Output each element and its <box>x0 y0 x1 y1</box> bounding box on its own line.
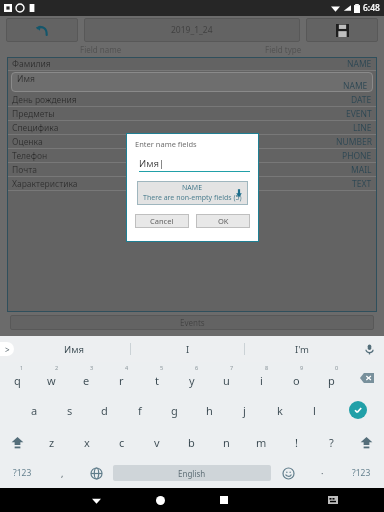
button[interactable]: 5 <box>139 362 174 394</box>
button[interactable]: 2 <box>34 362 69 394</box>
staticText: ? <box>329 435 334 450</box>
button[interactable]: День рождения <box>7 93 377 107</box>
staticText: a <box>31 403 38 418</box>
button[interactable]: Cancel <box>135 214 189 228</box>
button[interactable]: 2019_1_24 <box>84 18 300 42</box>
staticText: 4 <box>125 364 129 371</box>
button[interactable]: f <box>122 394 157 426</box>
staticText: r <box>119 373 124 388</box>
staticText: d <box>101 403 108 418</box>
staticText: 6 <box>195 364 199 371</box>
button[interactable]: ! <box>279 426 314 458</box>
staticText: f <box>138 403 142 418</box>
button[interactable]: Фамилия <box>7 57 377 71</box>
button[interactable]: c <box>104 426 139 458</box>
staticText: 6:48 <box>363 2 380 14</box>
button[interactable]: Switch keyboard <box>301 488 365 512</box>
button[interactable]: n <box>209 426 244 458</box>
staticText: , <box>61 467 64 479</box>
button[interactable]: s <box>52 394 87 426</box>
button[interactable]: 3 <box>69 362 104 394</box>
button[interactable]: k <box>262 394 297 426</box>
button[interactable]: 0 <box>314 362 349 394</box>
staticText: o <box>293 373 300 388</box>
button[interactable]: · <box>305 458 339 488</box>
staticText: 8 <box>265 364 269 371</box>
button[interactable]: d <box>87 394 122 426</box>
button[interactable]: Recents <box>192 488 256 512</box>
button[interactable]: h <box>192 394 227 426</box>
button[interactable]: b <box>174 426 209 458</box>
button[interactable]: Специфика <box>7 121 377 135</box>
staticText: 5 <box>160 364 164 371</box>
staticText: u <box>223 373 230 388</box>
button[interactable]: Voice input <box>362 342 376 356</box>
button[interactable]: Backspace <box>349 362 384 394</box>
button[interactable]: Имя <box>11 72 373 92</box>
button[interactable]: Change language <box>79 458 113 488</box>
button[interactable]: I'm <box>245 336 358 362</box>
button[interactable]: m <box>244 426 279 458</box>
staticText: q <box>14 373 21 388</box>
button[interactable]: ?123 <box>0 458 45 488</box>
staticText: Имя <box>64 343 84 356</box>
staticText: Field name <box>80 44 122 55</box>
button[interactable]: v <box>139 426 174 458</box>
staticText: n <box>223 435 230 450</box>
button[interactable]: Имя <box>18 336 130 362</box>
staticText: Имя <box>17 73 35 85</box>
staticText: 1 <box>20 364 24 371</box>
button[interactable]: a <box>17 394 52 426</box>
staticText: y <box>189 373 195 388</box>
button[interactable]: Телефон <box>7 149 377 163</box>
staticText: Cancel <box>150 216 174 226</box>
button[interactable]: Enter <box>332 394 384 426</box>
button[interactable]: Expand <box>0 342 14 356</box>
button[interactable]: 4 <box>104 362 139 394</box>
button[interactable]: l <box>297 394 332 426</box>
staticText: День рождения <box>12 94 77 106</box>
staticText: Имя| <box>139 157 165 170</box>
staticText: 3 <box>90 364 94 371</box>
button[interactable]: OK <box>196 214 250 228</box>
button[interactable]: 7 <box>209 362 244 394</box>
button[interactable]: ? <box>314 426 349 458</box>
staticText: 0 <box>335 364 339 371</box>
button[interactable]: j <box>227 394 262 426</box>
button[interactable]: I <box>131 336 244 362</box>
staticText: b <box>188 435 195 450</box>
staticText: 7 <box>230 364 234 371</box>
button[interactable]: 9 <box>279 362 314 394</box>
button[interactable]: ?123 <box>339 458 384 488</box>
button[interactable]: Hide keyboard <box>64 488 128 512</box>
button[interactable]: 8 <box>244 362 279 394</box>
staticText: j <box>243 403 246 418</box>
button[interactable]: Undo <box>6 18 78 42</box>
button[interactable]: z <box>34 426 69 458</box>
button[interactable]: Характеристика <box>7 177 377 191</box>
staticText: z <box>49 435 55 450</box>
staticText: 2019_1_24 <box>171 24 213 36</box>
button[interactable]: English <box>113 465 271 481</box>
staticText: DATE <box>351 94 372 106</box>
staticText: ?123 <box>352 467 371 479</box>
button[interactable]: g <box>157 394 192 426</box>
staticText: Enter name fields <box>135 139 197 149</box>
button[interactable]: Events <box>10 315 374 330</box>
button[interactable]: x <box>69 426 104 458</box>
button[interactable]: Предметы <box>7 107 377 121</box>
button[interactable]: Почта <box>7 163 377 177</box>
button[interactable]: , <box>45 458 79 488</box>
button[interactable]: Shift <box>349 426 384 458</box>
staticText: Фамилия <box>12 58 51 70</box>
button[interactable]: Home <box>128 488 192 512</box>
staticText: NAME <box>347 58 372 70</box>
button[interactable]: NAME <box>137 181 248 205</box>
button[interactable]: 1 <box>0 362 34 394</box>
button[interactable]: Emoji <box>271 458 305 488</box>
button[interactable]: Оценка <box>7 135 377 149</box>
button[interactable]: Shift <box>0 426 34 458</box>
button[interactable]: Save <box>306 18 378 42</box>
staticText: x <box>84 435 90 450</box>
button[interactable]: 6 <box>174 362 209 394</box>
